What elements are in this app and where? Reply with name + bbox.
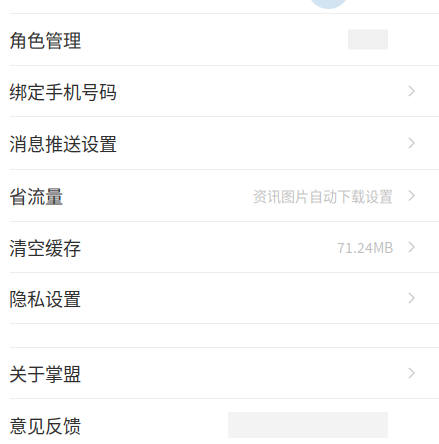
staticText: 71.24MB [337, 237, 393, 257]
staticText: 关于掌盟 [9, 360, 81, 386]
staticText: 清空缓存 [9, 234, 81, 260]
staticText: 绑定手机号码 [9, 78, 117, 104]
button[interactable]: 清空缓存 [0, 222, 439, 272]
button[interactable]: 隐私设置 [0, 273, 439, 323]
button[interactable]: 关于掌盟 [0, 348, 439, 398]
button[interactable]: 省流量 [0, 170, 439, 221]
staticText: 隐私设置 [9, 285, 81, 311]
staticText: 角色管理 [9, 26, 81, 53]
button[interactable]: 角色管理 [0, 14, 439, 65]
staticText: 消息推送设置 [9, 130, 117, 156]
staticText: 省流量 [9, 182, 63, 209]
staticText: 资讯图片自动下载设置 [253, 185, 393, 206]
staticText: 意见反馈 [9, 412, 81, 438]
button[interactable]: 主账号 [0, 0, 439, 13]
button[interactable]: 意见反馈 [0, 399, 439, 444]
button[interactable]: 绑定手机号码 [0, 66, 439, 116]
button[interactable]: 消息推送设置 [0, 117, 439, 169]
